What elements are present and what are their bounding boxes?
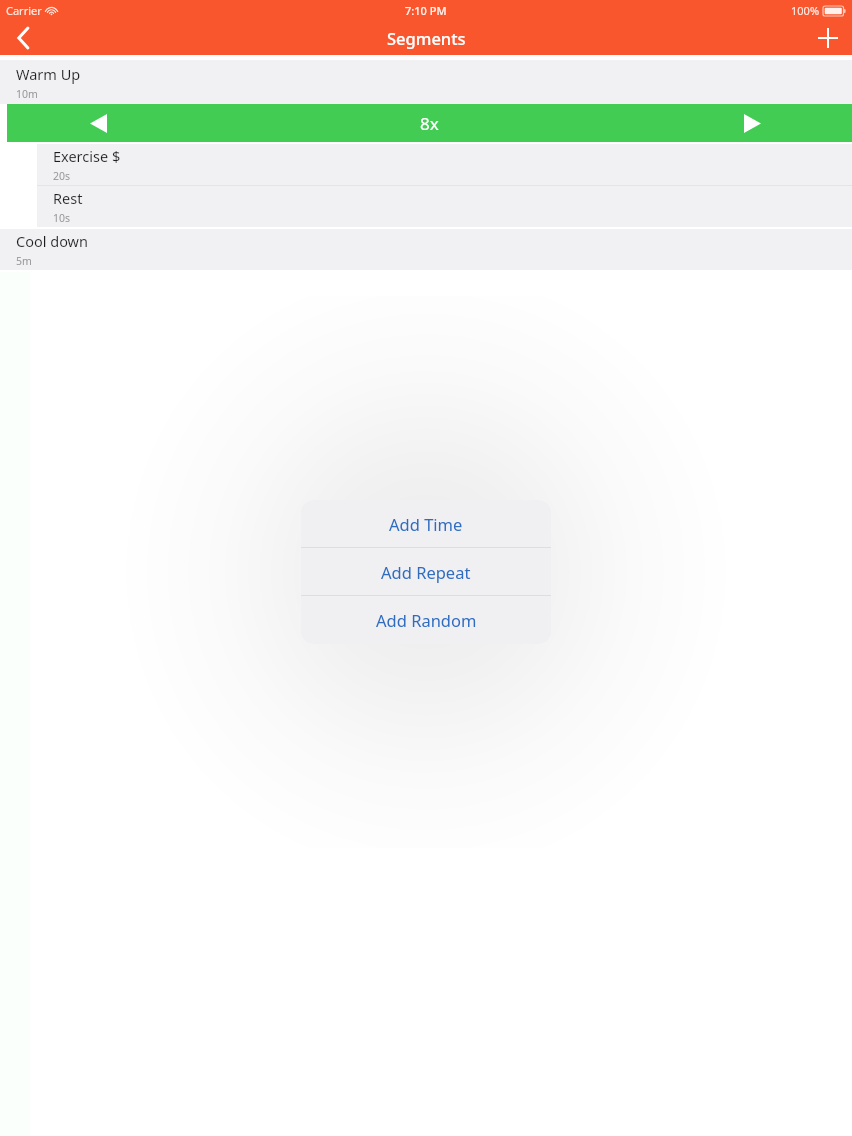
button[interactable]: Decrease repeats — [75, 104, 121, 142]
button[interactable]: Warm Up — [0, 60, 852, 104]
staticText: 10m — [16, 87, 38, 101]
button[interactable]: Add Time — [301, 500, 551, 547]
staticText: Add Time — [389, 513, 463, 535]
staticText: 7:10 PM — [405, 3, 447, 18]
button[interactable]: Add Repeat — [301, 548, 551, 595]
staticText: Cool down — [16, 231, 88, 251]
button[interactable]: Back — [0, 20, 46, 55]
staticText: 8x — [420, 112, 439, 135]
staticText: Rest — [53, 188, 83, 208]
button[interactable]: Exercise $ — [37, 144, 852, 185]
button[interactable]: Increase repeats — [729, 104, 775, 142]
staticText: 5m — [16, 254, 32, 268]
staticText: Segments — [387, 27, 466, 49]
button[interactable]: Add segment — [804, 20, 852, 55]
staticText: 20s — [53, 169, 71, 183]
staticText: Carrier — [6, 3, 42, 18]
button[interactable]: Add Random — [301, 596, 551, 643]
button[interactable]: Rest — [37, 186, 852, 227]
staticText: Add Repeat — [381, 561, 471, 583]
staticText: 10s — [53, 211, 71, 225]
staticText: Add Random — [376, 609, 477, 631]
button[interactable]: Decrease repeats — [7, 104, 852, 142]
button[interactable]: Cool down — [0, 229, 852, 270]
staticText: Exercise $ — [53, 146, 121, 166]
staticText: 100% — [791, 3, 820, 18]
staticText: Warm Up — [16, 64, 81, 84]
